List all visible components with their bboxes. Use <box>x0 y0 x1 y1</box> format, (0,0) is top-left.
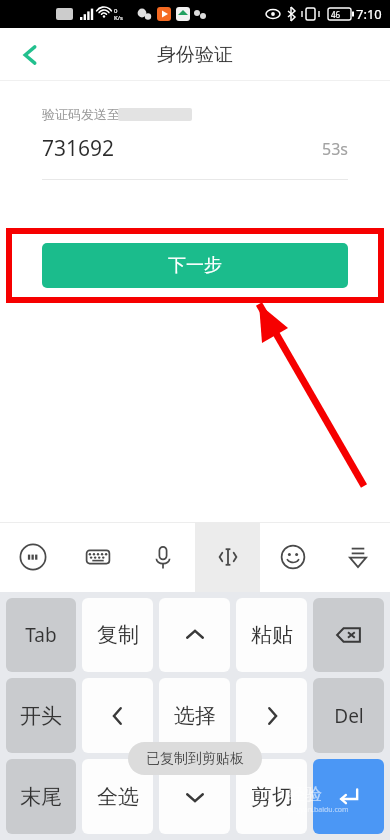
button[interactable]: Left <box>82 678 153 753</box>
staticText: 全选 <box>97 784 139 810</box>
staticText: 开头 <box>20 703 62 729</box>
staticText: 53s <box>322 138 348 160</box>
button[interactable]: Hide keyboard <box>325 522 390 592</box>
staticText: 已复制到剪贴板 <box>146 750 244 768</box>
button[interactable]: Right <box>236 678 307 753</box>
button[interactable]: Del <box>313 678 384 753</box>
button[interactable]: Tab <box>6 598 76 672</box>
staticText: 0 K/s <box>114 7 123 22</box>
staticText: Del <box>334 703 364 729</box>
staticText: jingyan.baidu.com <box>288 805 349 815</box>
button[interactable]: 剪切 <box>236 759 307 834</box>
staticText: 下一步 <box>168 254 222 277</box>
button[interactable]: 全选 <box>82 759 153 834</box>
button[interactable]: Up <box>159 598 230 672</box>
staticText: 剪切 <box>251 784 293 810</box>
button[interactable]: Keyboard <box>65 522 130 592</box>
button[interactable]: Back <box>8 33 52 77</box>
staticText: 7:10 <box>356 5 382 23</box>
button[interactable]: Input method <box>0 522 65 592</box>
staticText: 末尾 <box>20 784 62 810</box>
button[interactable]: 53s <box>322 138 348 160</box>
staticText: 验证码发送至 <box>42 106 120 122</box>
button[interactable]: 粘贴 <box>236 598 307 672</box>
button[interactable]: 复制 <box>82 598 153 672</box>
staticText: Tab <box>25 622 57 648</box>
staticText: 选择 <box>174 703 216 729</box>
staticText: 46 <box>331 9 341 20</box>
staticText: 粘贴 <box>251 622 293 648</box>
button[interactable]: 末尾 <box>6 759 76 834</box>
button[interactable]: Emoji <box>260 522 325 592</box>
button[interactable]: 下一步 <box>42 243 348 288</box>
button[interactable]: Down <box>159 759 230 834</box>
button[interactable]: Voice input <box>130 522 195 592</box>
staticText: 731692 <box>42 134 115 163</box>
button[interactable]: 选择 <box>159 678 230 753</box>
button[interactable]: Move cursor <box>195 522 260 592</box>
staticText: 复制 <box>97 622 139 648</box>
button[interactable]: Enter <box>313 759 384 834</box>
button[interactable]: Backspace <box>313 598 384 672</box>
staticText: 身份验证 <box>157 43 233 67</box>
button[interactable]: 开头 <box>6 678 76 753</box>
staticText: 经验 <box>288 784 322 805</box>
